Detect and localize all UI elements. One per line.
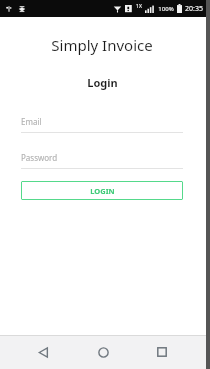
button[interactable]: Recent apps — [145, 335, 179, 369]
staticText: 100% — [158, 5, 174, 13]
staticText: LOGIN — [90, 186, 115, 196]
staticText: Password — [21, 152, 183, 163]
button[interactable]: Back — [26, 335, 60, 369]
button[interactable]: Home — [86, 335, 120, 369]
staticText: 1X — [136, 3, 142, 10]
staticText: Simply Invoice — [51, 35, 153, 55]
staticText: Email — [21, 116, 183, 127]
staticText: 20:35 — [185, 4, 203, 14]
button[interactable]: LOGIN — [21, 181, 183, 200]
staticText: Login — [87, 75, 118, 90]
button[interactable]: Password — [21, 152, 183, 169]
button[interactable]: Email — [21, 116, 183, 133]
